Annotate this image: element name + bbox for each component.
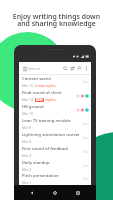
staticText: Mar 12 xyxy=(22,97,34,102)
staticText: Content saved xyxy=(22,76,51,82)
staticText: Mar xyxy=(83,150,89,154)
staticText: First round of feedback xyxy=(22,146,69,152)
button[interactable]: Menu xyxy=(21,65,28,72)
staticText: Search xyxy=(28,66,41,71)
button[interactable]: Daily standup xyxy=(19,159,91,173)
button[interactable]: Lightning stimulation review xyxy=(19,131,91,145)
staticText: Mar xyxy=(83,80,89,84)
button[interactable]: Filter xyxy=(69,65,76,72)
button[interactable]: More options xyxy=(83,65,90,72)
button[interactable]: Pitch presentation xyxy=(19,173,91,185)
staticText: Lightning stimulation review xyxy=(22,132,80,138)
staticText: Mar 10 xyxy=(22,111,34,116)
staticText: Lean TS training module xyxy=(22,118,71,124)
staticText: Mar 4 xyxy=(22,153,32,158)
button[interactable]: Search xyxy=(62,65,69,72)
staticText: Mar 2 xyxy=(22,167,32,172)
staticText: Daily standup xyxy=(22,160,50,166)
staticText: replies xyxy=(45,97,56,102)
staticText: Mar xyxy=(83,136,89,140)
button[interactable]: First round of feedback xyxy=(19,145,91,159)
button[interactable]: Content saved xyxy=(19,75,91,89)
staticText: Mar 1 xyxy=(22,180,32,185)
button[interactable]: Final round of client feedback xyxy=(19,89,91,103)
staticText: NEW xyxy=(36,98,43,102)
button[interactable]: Account xyxy=(76,65,83,72)
staticText: Mar xyxy=(83,164,89,168)
button[interactable]: Home xyxy=(50,188,60,198)
button[interactable]: HR ground xyxy=(19,103,91,117)
button[interactable]: Lean TS training module xyxy=(19,117,91,131)
staticText: Final round of client feedback xyxy=(22,90,76,96)
staticText: 2 new replies xyxy=(35,83,56,88)
button[interactable]: Back xyxy=(27,188,37,198)
button[interactable]: Recents xyxy=(73,188,83,198)
staticText: Mar 8 xyxy=(22,125,32,130)
staticText: Mar xyxy=(83,177,89,181)
staticText: Pitch presentation xyxy=(22,173,59,179)
staticText: HR ground xyxy=(22,104,44,110)
staticText: Mar xyxy=(83,122,89,126)
staticText: Enjoy writing things down and sharing kn… xyxy=(0,12,113,28)
staticText: Mar 15 xyxy=(22,83,34,88)
staticText: Mar 6 xyxy=(22,139,32,144)
